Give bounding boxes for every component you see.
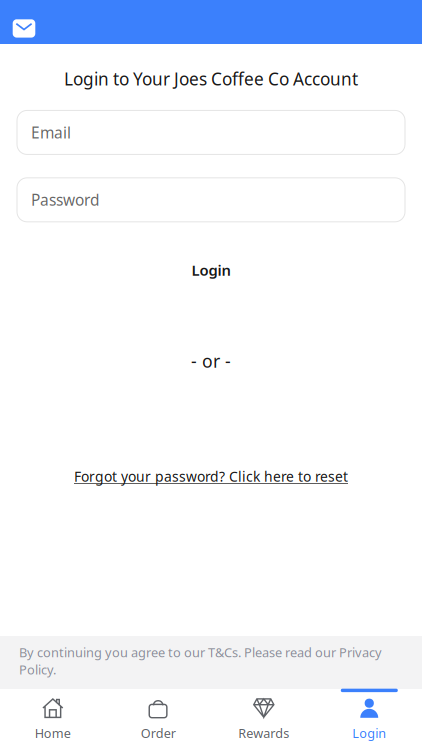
button[interactable]: Rewards (211, 689, 316, 750)
staticText: Login to Your Joes Coffee Co Account (64, 67, 358, 90)
staticText: Password (31, 189, 100, 210)
button[interactable]: Login (316, 689, 422, 750)
staticText: Home (35, 724, 71, 742)
button[interactable]: Login (0, 252, 422, 288)
button[interactable]: Forgot your password? Click here to rese… (74, 460, 348, 493)
staticText: Order (141, 724, 176, 742)
staticText: By continuing you agree to our T&Cs. Ple… (19, 643, 382, 678)
staticText: Forgot your password? Click here to rese… (74, 467, 348, 486)
button[interactable]: Inbox (0, 0, 35, 44)
staticText: Login (191, 260, 230, 280)
button[interactable]: Order (105, 689, 211, 750)
button[interactable]: Home (0, 689, 105, 750)
staticText: Rewards (238, 724, 289, 742)
button[interactable]: Password (17, 178, 405, 222)
staticText: - or - (191, 349, 231, 373)
button[interactable]: Email (17, 110, 405, 154)
staticText: Login (352, 724, 386, 742)
staticText: Email (31, 122, 71, 143)
